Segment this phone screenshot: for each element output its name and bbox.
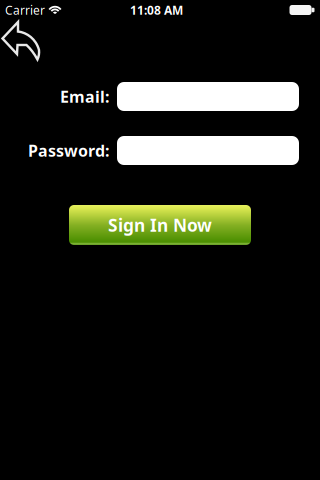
button[interactable]: Sign In Now [69,205,251,245]
staticText: 11:08 AM [130,2,183,18]
staticText: Email: [60,86,109,107]
button[interactable]: Back [0,16,44,64]
staticText: Password: [28,140,109,161]
staticText: Sign In Now [108,213,212,236]
staticText: Carrier [5,2,45,18]
